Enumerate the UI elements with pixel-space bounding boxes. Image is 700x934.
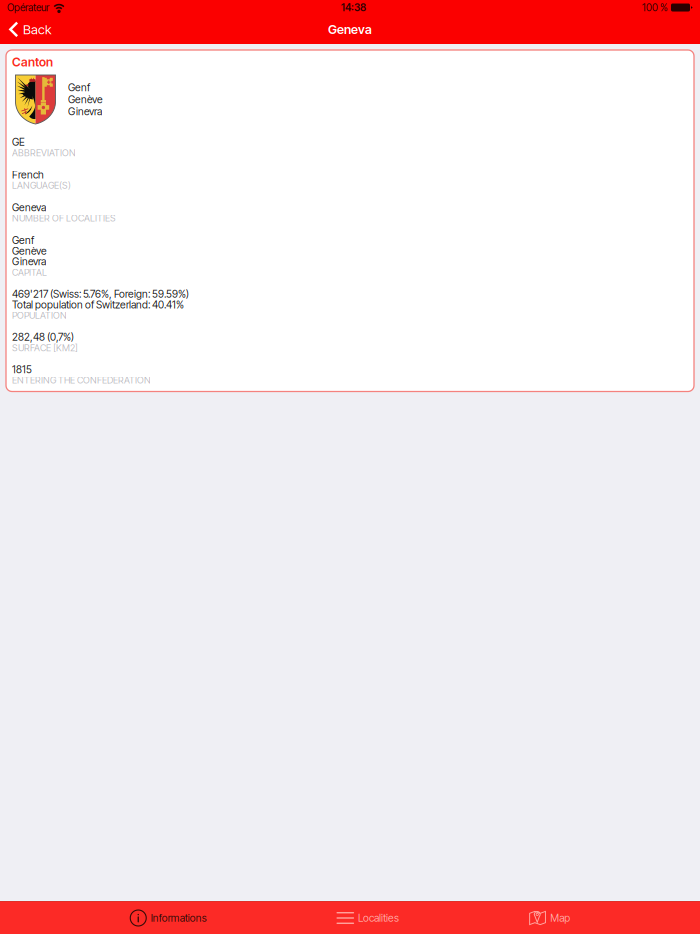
- staticText: POPULATION: [12, 310, 67, 321]
- staticText: ABBREVIATION: [12, 147, 76, 158]
- staticText: Informations: [151, 912, 207, 924]
- button[interactable]: Informations: [130, 899, 207, 934]
- staticText: French: [12, 168, 44, 181]
- staticText: Genf: [12, 234, 34, 246]
- staticText: Ginevra: [68, 105, 102, 118]
- staticText: GE: [12, 136, 25, 148]
- staticText: Genf: [68, 81, 90, 94]
- staticText: 14:38: [341, 1, 366, 14]
- button[interactable]: Localities: [336, 899, 399, 934]
- staticText: 469'217 (Swiss: 5.76%, Foreign: 59.59%): [12, 288, 189, 300]
- staticText: Geneva: [328, 22, 372, 37]
- button[interactable]: Map: [529, 899, 570, 934]
- staticText: Localities: [358, 912, 399, 924]
- staticText: 282,48 (0,7%): [12, 331, 74, 343]
- staticText: Back: [23, 22, 51, 37]
- staticText: Genève: [68, 93, 103, 106]
- staticText: CAPITAL: [12, 267, 47, 278]
- staticText: Opérateur: [7, 1, 49, 14]
- staticText: Geneva: [12, 201, 46, 214]
- staticText: NUMBER OF LOCALITIES: [12, 212, 116, 224]
- staticText: 1815: [12, 363, 32, 376]
- staticText: Genève: [12, 245, 47, 257]
- staticText: Ginevra: [12, 255, 46, 268]
- staticText: Total population of Switzerland: 40.41%: [12, 298, 184, 311]
- staticText: Canton: [12, 55, 53, 69]
- staticText: ENTERING THE CONFEDERATION: [12, 374, 151, 386]
- staticText: LANGUAGE(S): [12, 180, 71, 191]
- button[interactable]: Back: [0, 15, 61, 44]
- staticText: Map: [550, 912, 570, 924]
- staticText: SURFACE [KM2]: [12, 342, 78, 353]
- staticText: 100 %: [642, 1, 668, 14]
